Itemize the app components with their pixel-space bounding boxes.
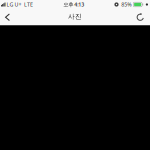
- staticText: 85%: [121, 1, 131, 8]
- staticText: 사진: [68, 12, 82, 21]
- staticText: LG U+: [7, 1, 22, 8]
- button[interactable]: Refresh: [130, 9, 150, 25]
- button[interactable]: Back: [0, 9, 15, 25]
- staticText: 오후 4:13: [63, 1, 84, 8]
- staticText: LTE: [24, 1, 33, 8]
